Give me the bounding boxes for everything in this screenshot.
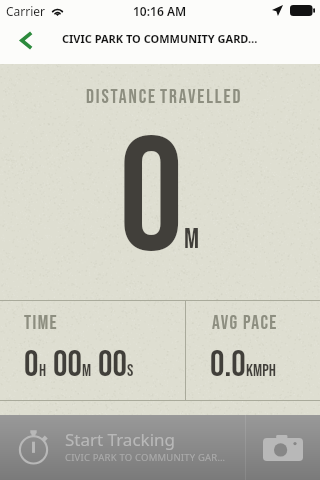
staticText: H xyxy=(39,361,47,381)
button[interactable]: TIME xyxy=(0,301,185,400)
staticText: 0.0 xyxy=(210,344,246,387)
button[interactable]: AVG PACE xyxy=(186,301,320,400)
staticText: AVG PACE xyxy=(212,311,278,334)
staticText: Start Tracking xyxy=(65,428,175,451)
staticText: M xyxy=(82,361,92,381)
staticText: Carrier xyxy=(6,3,46,19)
staticText: CIVIC PARK TO COMMUNITY GAR… xyxy=(65,451,226,464)
staticText: 0 xyxy=(119,104,184,297)
staticText: S xyxy=(127,361,134,381)
button[interactable]: Back xyxy=(4,19,48,61)
staticText: 0 xyxy=(24,344,39,387)
staticText: 00 xyxy=(53,344,82,387)
staticText: TRAVELLED xyxy=(160,85,243,108)
staticText: 00 xyxy=(98,344,127,387)
staticText: CIVIC PARK TO COMMUNITY GARD… xyxy=(62,31,258,46)
staticText: M xyxy=(184,223,200,257)
button[interactable]: Start Tracking xyxy=(0,415,245,480)
staticText: TIME xyxy=(24,311,59,334)
staticText: KMPH xyxy=(246,361,276,381)
staticText: DISTANCE xyxy=(86,85,158,108)
button[interactable]: Camera xyxy=(246,415,320,480)
staticText: 10:16 AM xyxy=(133,3,187,19)
